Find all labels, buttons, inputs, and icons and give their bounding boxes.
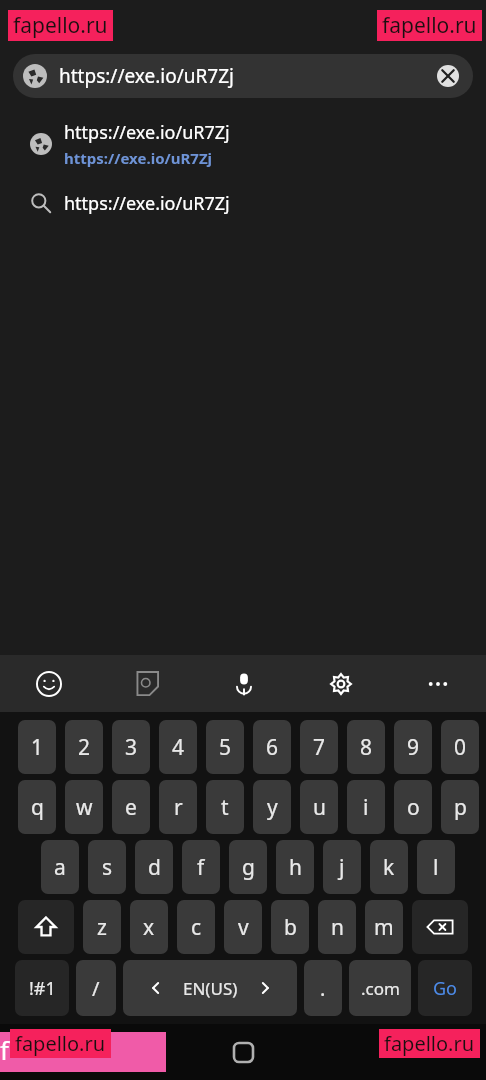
staticText: / <box>92 975 100 1002</box>
button[interactable]: https://exe.io/uR7Zj <box>0 175 486 231</box>
button[interactable]: 9 <box>394 720 432 774</box>
staticText: r <box>174 793 183 822</box>
staticText: f om <box>0 1032 160 1072</box>
staticText: fapello.ru <box>384 1030 475 1057</box>
staticText: g <box>242 853 255 882</box>
staticText: h <box>289 853 302 882</box>
staticText: s <box>102 853 113 882</box>
button[interactable]: h <box>276 840 314 894</box>
button[interactable]: 5 <box>206 720 244 774</box>
staticText: b <box>284 913 297 942</box>
button[interactable]: x <box>130 900 168 954</box>
staticText: n <box>331 913 344 942</box>
staticText: 8 <box>360 733 373 762</box>
button[interactable]: https://exe.io/uR7Zj <box>0 112 486 175</box>
staticText: !#1 <box>29 976 56 1001</box>
staticText: p <box>454 793 467 822</box>
button[interactable]: l <box>417 840 455 894</box>
button[interactable]: m <box>365 900 403 954</box>
staticText: 2 <box>78 733 91 762</box>
button[interactable]: i <box>347 780 385 834</box>
staticText: q <box>31 793 44 822</box>
staticText: fapello.ru <box>382 11 477 40</box>
staticText: w <box>76 793 93 822</box>
staticText: https://exe.io/uR7Zj <box>59 63 433 89</box>
staticText: 1 <box>31 733 44 762</box>
staticText: d <box>148 853 161 882</box>
button[interactable]: Clear <box>433 61 463 91</box>
button[interactable]: 4 <box>159 720 197 774</box>
staticText: 4 <box>172 733 185 762</box>
button[interactable]: d <box>135 840 173 894</box>
button[interactable]: 3 <box>112 720 150 774</box>
staticText: c <box>191 913 202 942</box>
staticText: fapello.ru <box>15 1030 106 1057</box>
button[interactable]: !#1 <box>15 960 69 1016</box>
button[interactable]: b <box>271 900 309 954</box>
staticText: 3 <box>125 733 138 762</box>
button[interactable]: https://exe.io/uR7Zj <box>13 54 473 98</box>
button[interactable]: r <box>159 780 197 834</box>
staticText: e <box>125 793 137 822</box>
button[interactable]: g <box>229 840 267 894</box>
button[interactable]: z <box>83 900 121 954</box>
button[interactable]: 1 <box>18 720 56 774</box>
button[interactable]: n <box>318 900 356 954</box>
staticText: f <box>197 853 205 882</box>
button[interactable]: Shift <box>18 900 74 954</box>
button[interactable]: e <box>112 780 150 834</box>
button[interactable]: / <box>76 960 116 1016</box>
staticText: 0 <box>454 733 467 762</box>
staticText: 6 <box>266 733 279 762</box>
button[interactable]: Home <box>223 1032 263 1072</box>
button[interactable]: . <box>304 960 342 1016</box>
staticText: EN(US) <box>183 977 238 1000</box>
button[interactable]: p <box>441 780 479 834</box>
staticText: t <box>221 793 229 822</box>
button[interactable]: v <box>224 900 262 954</box>
button[interactable]: Go <box>418 960 472 1016</box>
button[interactable]: j <box>323 840 361 894</box>
staticText: x <box>143 913 155 942</box>
button[interactable]: k <box>370 840 408 894</box>
button[interactable]: u <box>300 780 338 834</box>
button[interactable]: 7 <box>300 720 338 774</box>
button[interactable]: More options <box>389 655 486 712</box>
staticText: v <box>238 913 249 942</box>
staticText: j <box>339 853 345 882</box>
button[interactable]: Settings <box>292 655 389 712</box>
button[interactable]: q <box>18 780 56 834</box>
staticText: fapello.ru <box>13 11 108 40</box>
button[interactable]: 8 <box>347 720 385 774</box>
button[interactable]: .com <box>349 960 411 1016</box>
button[interactable]: c <box>177 900 215 954</box>
button[interactable]: o <box>394 780 432 834</box>
button[interactable]: t <box>206 780 244 834</box>
button[interactable]: 2 <box>65 720 103 774</box>
button[interactable]: Emoji <box>0 655 98 712</box>
staticText: 5 <box>219 733 232 762</box>
button[interactable]: f <box>182 840 220 894</box>
button[interactable]: a <box>41 840 79 894</box>
staticText: https://exe.io/uR7Zj <box>64 148 213 168</box>
staticText: i <box>363 793 369 822</box>
staticText: u <box>313 793 326 822</box>
staticText: l <box>433 853 439 882</box>
staticText: k <box>383 853 395 882</box>
button[interactable]: 0 <box>441 720 479 774</box>
button[interactable]: y <box>253 780 291 834</box>
staticText: 7 <box>313 733 326 762</box>
button[interactable]: 6 <box>253 720 291 774</box>
button[interactable]: Stickers <box>98 655 195 712</box>
staticText: . <box>320 975 326 1002</box>
staticText: m <box>374 913 394 942</box>
button[interactable]: w <box>65 780 103 834</box>
staticText: 9 <box>407 733 420 762</box>
button[interactable]: Voice input <box>195 655 292 712</box>
staticText: .com <box>361 977 400 1000</box>
button[interactable]: EN(US) <box>123 960 297 1016</box>
button[interactable]: s <box>88 840 126 894</box>
staticText: o <box>407 793 420 822</box>
staticText: Go <box>433 976 457 1001</box>
button[interactable]: Backspace <box>412 900 468 954</box>
